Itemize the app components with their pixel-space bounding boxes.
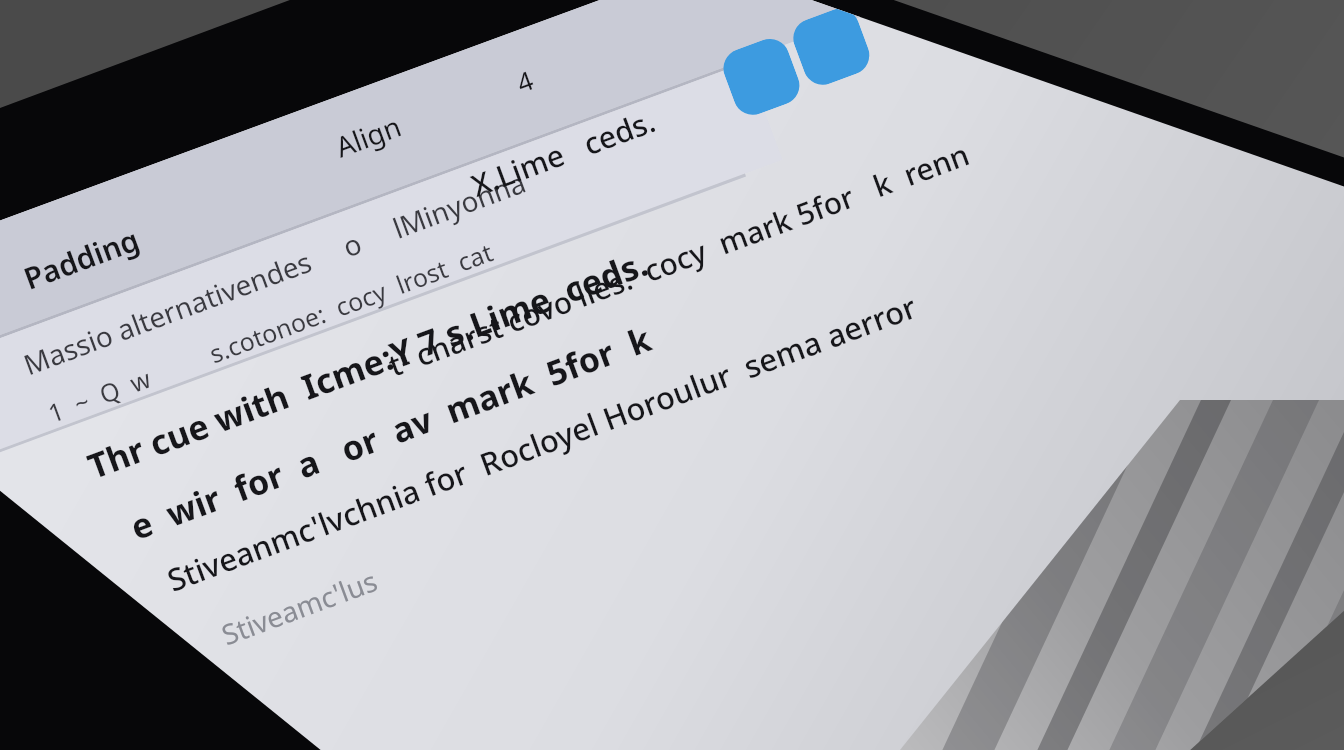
staticText: e wir for a or av mark 5for k — [124, 315, 658, 550]
staticText: 1 ~ Q w s.cotonoe: cocy lrost cat — [43, 234, 498, 430]
staticText: Stiveanmc'lvchnia for Rocloyel Horoulur … — [161, 285, 922, 601]
staticText: Align — [330, 107, 406, 165]
button[interactable]: Toggle one — [718, 33, 805, 121]
staticText: Stiveamc'lus — [216, 561, 382, 653]
button[interactable]: Sort — [511, 62, 538, 100]
button[interactable]: Toggle two — [788, 3, 875, 90]
staticText: Massio alternativendes o lMinyonna — [18, 163, 531, 383]
staticText: t- cnarst covo lles. cocy mark 5for k re… — [383, 133, 975, 386]
staticText: X.Lime ceds. — [465, 100, 661, 206]
staticText: Padding — [18, 219, 145, 299]
button[interactable]: Align — [330, 107, 406, 165]
staticText: Thr cue with Icme:Y 7 s.Lime ceds. — [81, 240, 654, 489]
staticText: 4 — [511, 62, 538, 100]
button[interactable]: Padding — [18, 219, 145, 299]
